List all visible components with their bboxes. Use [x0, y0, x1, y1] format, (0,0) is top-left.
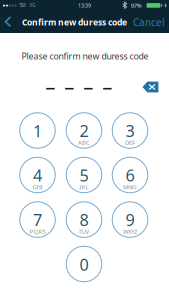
button[interactable]: 3 — [108, 109, 152, 152]
staticText: Please confirm new duress code — [21, 50, 148, 62]
button[interactable]: 5 — [62, 154, 106, 196]
staticText: TUV — [78, 227, 89, 235]
staticText: 0 — [79, 253, 88, 276]
staticText: Confirm new duress code — [22, 16, 127, 28]
staticText: 2 — [79, 120, 88, 142]
button[interactable]: 1 — [15, 109, 60, 152]
staticText: 6 — [125, 164, 134, 186]
staticText: PQRS — [29, 227, 45, 235]
staticText: 1 — [33, 120, 42, 142]
button[interactable]: 4 — [15, 154, 60, 196]
staticText: 3 — [125, 120, 134, 142]
staticText: TIM — [19, 2, 26, 8]
staticText: 97% — [131, 1, 142, 9]
button[interactable]: 6 — [108, 154, 152, 196]
staticText: ABC — [78, 138, 90, 146]
staticText: GHI — [32, 183, 42, 191]
button[interactable]: 2 — [62, 109, 106, 152]
button[interactable]: 0 — [62, 243, 106, 285]
staticText: 5 — [79, 164, 88, 186]
staticText: 3G — [29, 2, 35, 8]
staticText: 7 — [33, 209, 42, 231]
button[interactable]: 9 — [108, 198, 152, 241]
staticText: 13:39 — [78, 2, 91, 9]
staticText: 8 — [79, 209, 88, 231]
button[interactable]: 7 — [15, 198, 60, 241]
staticText: 9 — [125, 209, 134, 231]
staticText: Cancel — [133, 16, 165, 29]
staticText: 4 — [33, 164, 42, 186]
staticText: DEF — [125, 138, 135, 146]
button[interactable]: Cancel — [132, 12, 166, 32]
staticText: JKL — [79, 183, 88, 191]
staticText: MNO — [123, 183, 137, 191]
button[interactable]: Delete — [139, 79, 161, 95]
button[interactable]: 8 — [62, 198, 106, 241]
staticText: WXYZ — [123, 227, 137, 235]
button[interactable]: Back — [0, 11, 16, 33]
